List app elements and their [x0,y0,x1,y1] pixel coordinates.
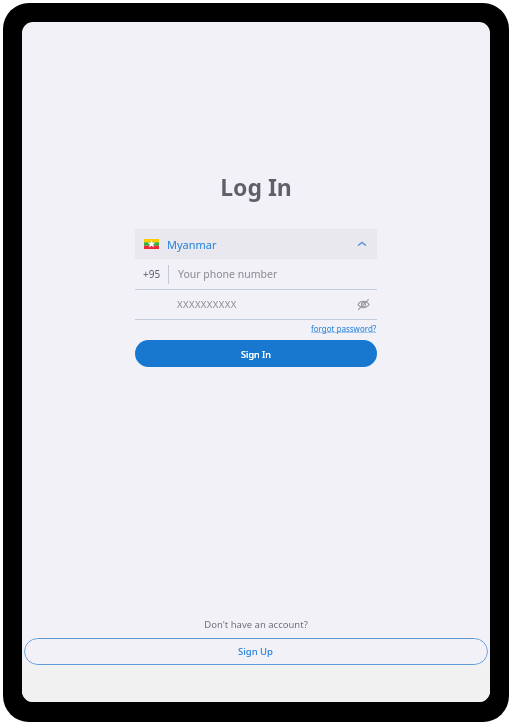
button[interactable]: Sign Up [24,638,488,665]
staticText: XXXXXXXXXX [177,298,357,311]
button[interactable]: Myanmar [135,229,377,259]
button[interactable]: +95 [135,259,168,289]
staticText: +95 [143,267,161,281]
button[interactable]: Show password [357,298,370,311]
button[interactable]: forgot password? [311,323,377,334]
button[interactable]: Sign In [135,340,377,367]
staticText: Sign Up [238,645,274,658]
staticText: Sign In [241,348,271,360]
button[interactable]: XXXXXXXXXX [135,290,377,319]
other: Collapse country list [356,238,368,250]
staticText: Your phone number [178,267,278,281]
staticText: Log In [22,171,490,202]
staticText: Myanmar [167,237,217,252]
staticText: Don't have an account? [22,618,490,631]
button[interactable]: Your phone number [169,259,377,289]
